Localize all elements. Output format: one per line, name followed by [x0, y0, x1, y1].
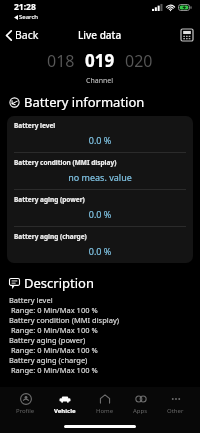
staticText: Vehicle [54, 407, 76, 415]
staticText: Battery information [24, 93, 145, 111]
staticText: 0.0 % [14, 208, 186, 220]
staticText: Battery aging (power) [14, 195, 85, 204]
staticText: 0.0 % [14, 245, 186, 257]
button[interactable]: Profile [13, 391, 38, 417]
staticText: no meas. value [14, 171, 186, 183]
staticText: Search [19, 13, 38, 21]
staticText: Range: 0 Min/Max 100 % [9, 325, 98, 335]
staticText: Channel [86, 76, 114, 86]
button[interactable]: 019 [81, 47, 119, 74]
button[interactable]: Battery aging (charge) [7, 227, 193, 263]
button[interactable]: Home [93, 391, 117, 417]
staticText: 019 [85, 49, 115, 72]
staticText: Range: 0 Min/Max 100 % [9, 305, 98, 315]
staticText: Apps [133, 407, 148, 415]
staticText: Battery level [9, 295, 53, 305]
staticText: 0.0 % [14, 134, 186, 146]
button[interactable]: 018 [41, 48, 81, 74]
button[interactable]: Battery level [7, 116, 193, 152]
button[interactable]: Battery aging (power) [7, 190, 193, 226]
staticText: 020 [125, 50, 153, 72]
staticText: Back [15, 28, 39, 42]
staticText: Profile [16, 407, 35, 415]
button[interactable]: Keypad [180, 28, 194, 42]
staticText: 21:28 [14, 1, 36, 13]
staticText: Battery aging (charge) [14, 232, 87, 241]
button[interactable]: Battery condition (MMI display) [7, 153, 193, 189]
staticText: Battery aging (power) [9, 335, 86, 345]
button[interactable]: Back [0, 24, 47, 46]
button[interactable]: Vehicle [51, 391, 79, 417]
staticText: Battery aging (charge) [9, 355, 88, 365]
staticText: Battery level [14, 121, 56, 130]
staticText: Range: 0 Min/Max 100 % [9, 345, 98, 355]
staticText: Battery condition (MMI display) [14, 158, 117, 167]
button[interactable]: Apps [130, 391, 151, 417]
staticText: Other [167, 407, 184, 415]
staticText: 018 [47, 50, 75, 72]
button[interactable]: 020 [119, 48, 159, 74]
button[interactable]: Other [164, 391, 187, 417]
staticText: Range: 0 Min/Max 100 % [9, 365, 98, 375]
staticText: Home [96, 407, 114, 415]
staticText: Battery condition (MMI display) [9, 315, 120, 325]
staticText: Live data [78, 28, 122, 42]
staticText: Description [24, 274, 94, 292]
